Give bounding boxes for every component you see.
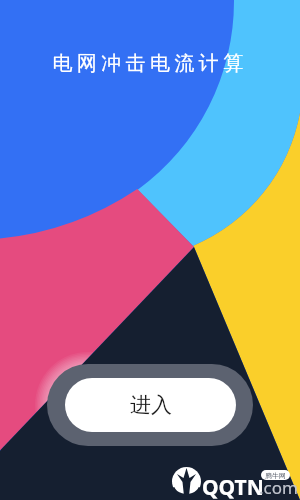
staticText: 腾牛网 (265, 471, 286, 480)
staticText: 进入 (130, 392, 172, 418)
button[interactable]: 进入 (47, 364, 253, 446)
staticText: 电网冲击电流计算 (52, 51, 248, 76)
staticText: QQTN (202, 473, 264, 500)
staticText: .com (259, 476, 298, 499)
